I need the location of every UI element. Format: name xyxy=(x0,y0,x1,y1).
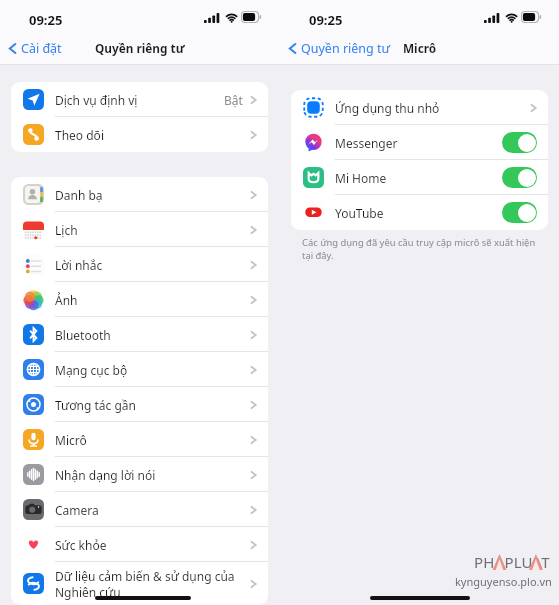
button[interactable]: Lời nhắc xyxy=(11,247,268,282)
button[interactable]: Micrô xyxy=(11,422,268,457)
button[interactable]: Camera xyxy=(11,492,268,527)
button[interactable]: YouTube xyxy=(291,195,548,230)
staticText: Bật xyxy=(224,92,243,108)
staticText: Danh bạ xyxy=(55,187,103,203)
staticText: kynguyenso.plo.vn xyxy=(455,574,552,589)
button[interactable]: Sức khỏe xyxy=(11,527,268,562)
staticText: 09:25 xyxy=(29,11,63,29)
staticText: Micrô xyxy=(55,432,87,448)
staticText: Cài đặt xyxy=(21,40,62,57)
staticText: Ảnh xyxy=(55,292,78,308)
staticText: Bluetooth xyxy=(55,327,111,343)
button[interactable]: Mi Home xyxy=(291,160,548,195)
staticText: Lịch xyxy=(55,222,78,238)
button[interactable]: Quyền riêng tư xyxy=(287,33,390,63)
staticText: Quyền riêng tư xyxy=(95,40,185,56)
staticText: Micrô xyxy=(403,40,437,56)
button[interactable]: Messenger xyxy=(291,125,548,160)
button[interactable]: Ứng dụng thu nhỏ xyxy=(291,90,548,125)
staticText: tại đây. xyxy=(302,249,334,262)
button[interactable]: Toggle Messenger xyxy=(502,132,537,153)
button[interactable]: Nhận dạng lời nói xyxy=(11,457,268,492)
staticText: Mi Home xyxy=(335,170,387,186)
staticText: 09:25 xyxy=(309,11,343,29)
button[interactable]: Dịch vụ định vị xyxy=(11,82,268,117)
staticText: YouTube xyxy=(335,205,384,221)
button[interactable]: Bluetooth xyxy=(11,317,268,352)
button[interactable]: Ảnh xyxy=(11,282,268,317)
staticText: Mạng cục bộ xyxy=(55,362,128,378)
staticText: Lời nhắc xyxy=(55,257,103,273)
button[interactable]: Theo dõi xyxy=(11,117,268,152)
staticText: Nghiên cứu xyxy=(55,584,121,600)
button[interactable]: Lịch xyxy=(11,212,268,247)
button[interactable]: Danh bạ xyxy=(11,177,268,212)
button[interactable]: Mạng cục bộ xyxy=(11,352,268,387)
button[interactable]: Dữ liệu cảm biến & sử dụng của xyxy=(11,562,268,605)
staticText: Dịch vụ định vị xyxy=(55,92,138,108)
staticText: PHAPLUAT xyxy=(474,552,550,572)
button[interactable]: Cài đặt xyxy=(7,33,62,63)
button[interactable]: Tương tác gần xyxy=(11,387,268,422)
staticText: Dữ liệu cảm biến & sử dụng của xyxy=(55,568,235,584)
staticText: Messenger xyxy=(335,135,398,151)
staticText: Quyền riêng tư xyxy=(301,40,390,57)
staticText: Nhận dạng lời nói xyxy=(55,467,156,483)
staticText: Các ứng dụng đã yêu cầu truy cập micrô s… xyxy=(302,236,536,249)
staticText: Tương tác gần xyxy=(55,397,136,413)
button[interactable]: Toggle Mi Home xyxy=(502,167,537,188)
button[interactable]: Toggle YouTube xyxy=(502,202,537,223)
staticText: Sức khỏe xyxy=(55,537,107,553)
staticText: Camera xyxy=(55,502,99,518)
staticText: Ứng dụng thu nhỏ xyxy=(335,100,440,116)
staticText: Theo dõi xyxy=(55,127,104,143)
